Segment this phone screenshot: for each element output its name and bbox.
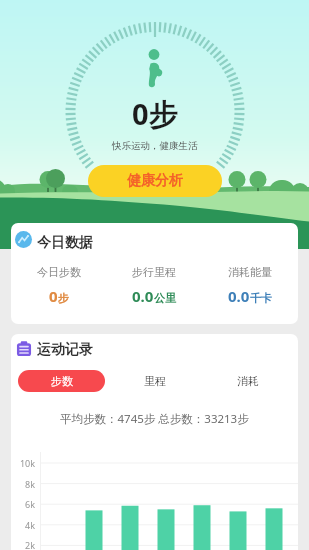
staticText: 运动记录 [37, 341, 93, 359]
staticText: 8k [11, 478, 35, 490]
staticText: 公里 [154, 291, 176, 305]
staticText: 今日数据 [37, 234, 93, 252]
staticText: 10k [11, 457, 35, 469]
staticText: 2k [11, 539, 35, 550]
staticText: 今日步数 [37, 265, 81, 279]
button[interactable]: 健康分析 [88, 165, 222, 197]
staticText: 千卡 [250, 291, 272, 305]
staticText: 4k [11, 519, 35, 531]
staticText: 6k [11, 498, 35, 510]
staticText: 步行里程 [132, 265, 176, 279]
staticText: 步 [58, 291, 69, 305]
button[interactable]: 消耗 [201, 370, 294, 392]
staticText: 0步 [132, 94, 178, 134]
staticText: 消耗能量 [228, 265, 272, 279]
staticText: 健康分析 [127, 172, 183, 190]
staticText: 0.0 [132, 286, 154, 306]
staticText: 平均步数：4745步 总步数：33213步 [60, 411, 249, 427]
button[interactable]: 里程 [108, 370, 201, 392]
staticText: 0.0 [228, 286, 250, 306]
staticText: 步数 [51, 374, 73, 388]
button[interactable]: 步数 [18, 370, 105, 392]
staticText: 消耗 [237, 374, 259, 388]
staticText: 里程 [144, 374, 166, 388]
staticText: 0 [49, 286, 58, 306]
staticText: 快乐运动，健康生活 [112, 140, 198, 152]
